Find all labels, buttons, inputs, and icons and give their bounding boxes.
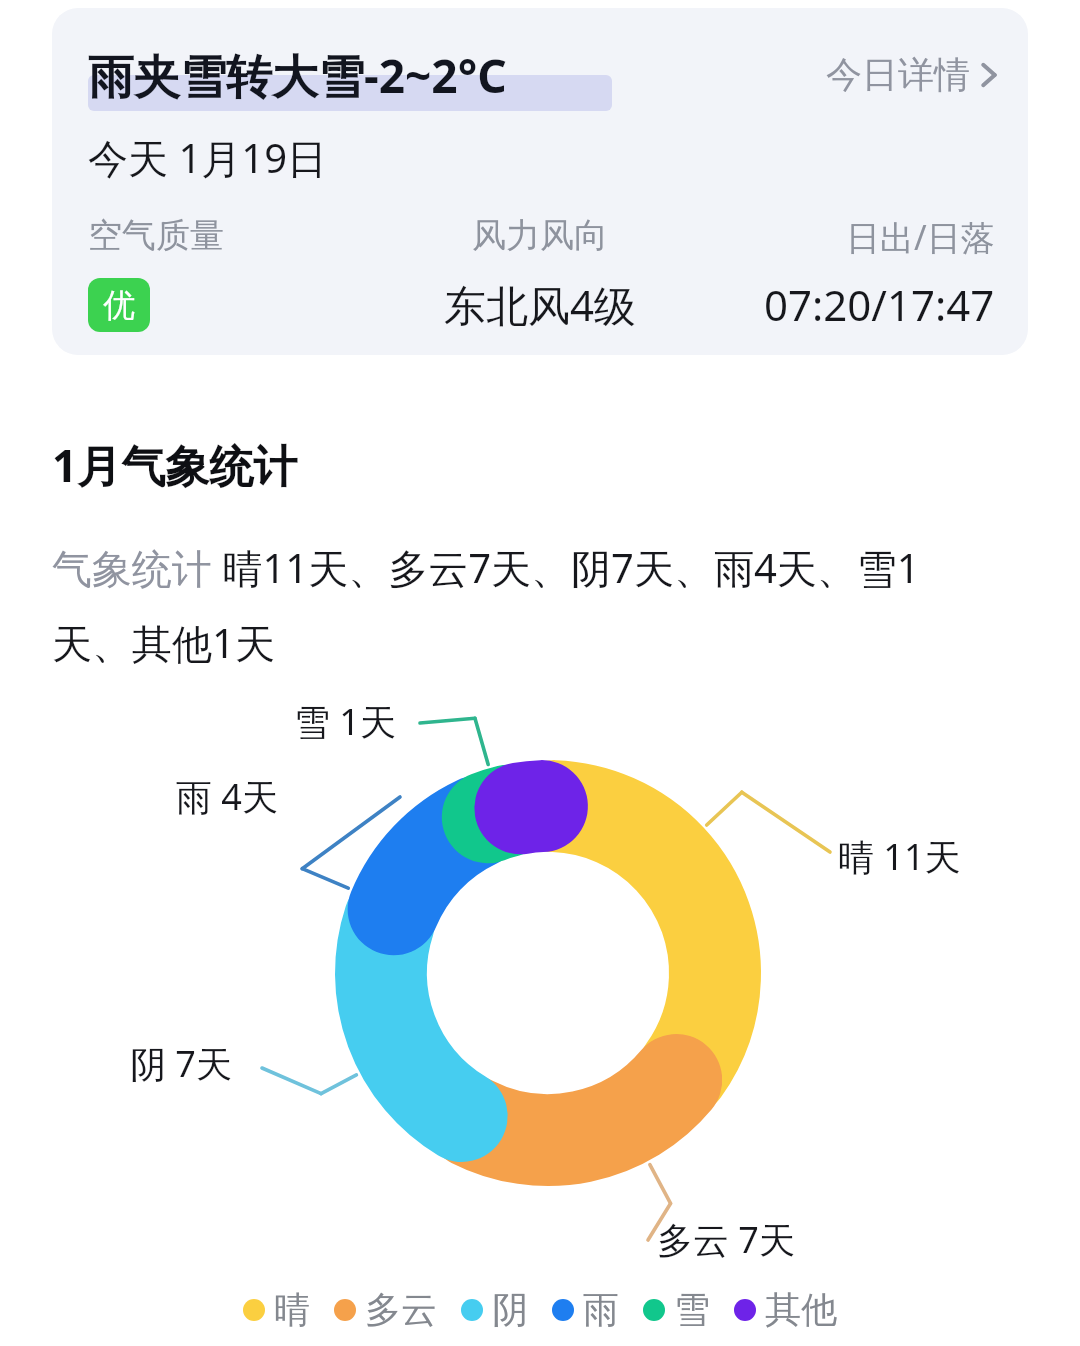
staticText: 空气质量: [88, 214, 224, 257]
button[interactable]: 阴: [449, 1283, 540, 1336]
staticText: 优: [103, 285, 135, 325]
staticText: 雪 1天: [294, 697, 396, 746]
staticText: 其他: [765, 1287, 837, 1332]
staticText: 风力风向: [472, 214, 608, 257]
staticText: 晴: [274, 1287, 310, 1332]
staticText: 阴: [492, 1287, 528, 1332]
button[interactable]: 晴: [231, 1283, 322, 1336]
staticText: 多云: [365, 1287, 437, 1332]
button[interactable]: 今日详情: [822, 48, 1002, 101]
button[interactable]: 雪: [631, 1283, 722, 1336]
staticText: 东北风4级: [444, 276, 637, 333]
staticText: 雨夹雪转大雪-2~2°C: [88, 44, 507, 107]
staticText: 多云 7天: [657, 1215, 795, 1264]
staticText: 雪: [674, 1287, 710, 1332]
staticText: 1月气象统计: [52, 435, 298, 495]
staticText: 雨 4天: [176, 772, 278, 821]
staticText: 07:20/17:47: [764, 276, 995, 333]
staticText: 日出/日落: [846, 214, 995, 260]
button[interactable]: 其他: [722, 1283, 849, 1336]
button[interactable]: 多云: [322, 1283, 449, 1336]
staticText: 今天 1月19日: [88, 130, 328, 185]
button[interactable]: 雨: [540, 1283, 631, 1336]
staticText: 晴 11天: [838, 832, 961, 881]
staticText: 雨: [583, 1287, 619, 1332]
staticText: 今日详情: [826, 52, 970, 97]
button[interactable]: 雨夹雪转大雪-2~2°C: [52, 8, 1028, 355]
staticText: 气象统计 晴11天、多云7天、阴7天、雨4天、雪1天、其他1天: [52, 540, 982, 669]
staticText: 阴 7天: [130, 1039, 232, 1088]
